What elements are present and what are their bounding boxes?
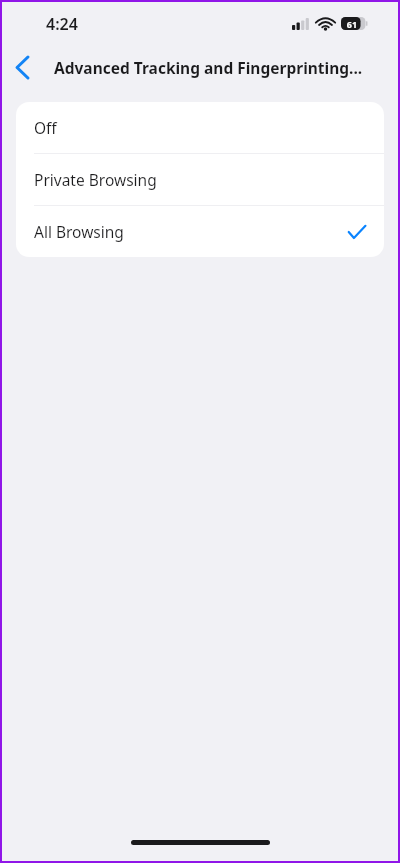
staticText: Advanced Tracking and Fingerprinting...	[54, 57, 363, 78]
button[interactable]: Off	[16, 102, 384, 153]
staticText: Private Browsing	[34, 169, 157, 190]
staticText: Off	[34, 117, 57, 138]
staticText: All Browsing	[34, 221, 124, 242]
button[interactable]: All Browsing	[16, 206, 384, 257]
staticText: 61	[341, 18, 363, 30]
button[interactable]: Private Browsing	[16, 154, 384, 205]
staticText: 4:24	[46, 13, 78, 35]
button[interactable]: Back	[2, 45, 42, 89]
